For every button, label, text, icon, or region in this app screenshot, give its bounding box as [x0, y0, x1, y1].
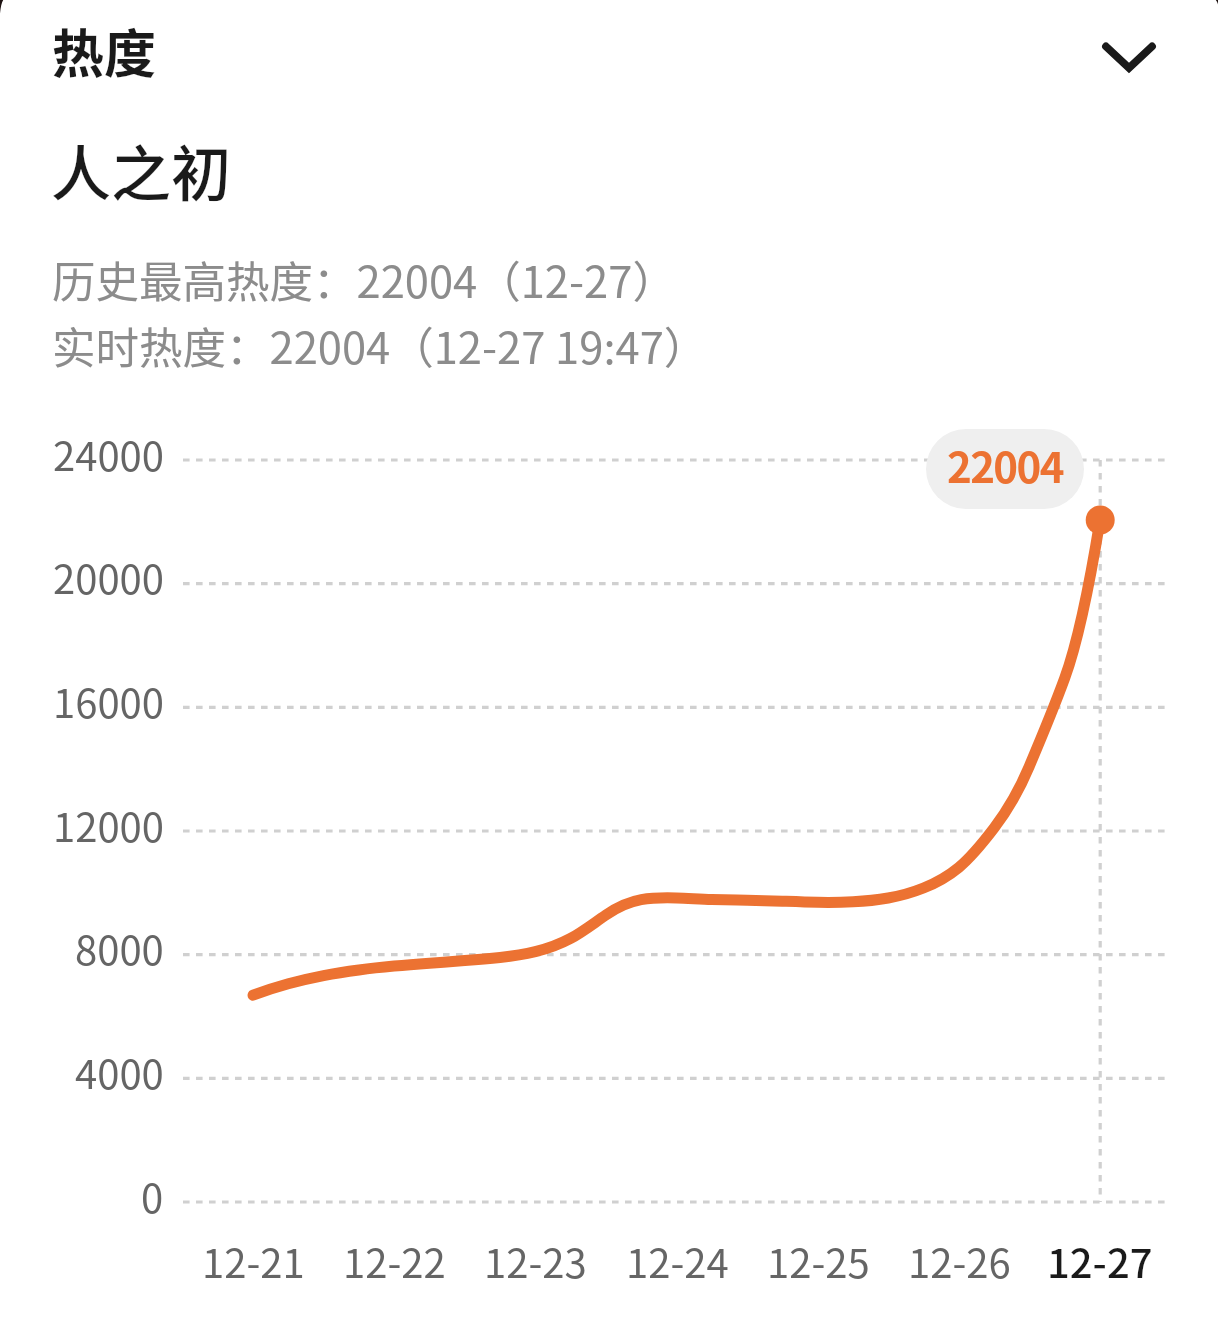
staticText: 实时热度：22004（12-27 19:47）	[52, 314, 708, 377]
button[interactable]: 12-25	[738, 1232, 898, 1290]
staticText: 12-26	[908, 1232, 1011, 1290]
staticText: 0	[141, 1167, 164, 1225]
staticText: 历史最高热度：22004（12-27）	[52, 248, 676, 311]
staticText: 人之初	[51, 126, 231, 213]
staticText: 热度	[52, 13, 157, 88]
staticText: 12-27	[1047, 1232, 1153, 1290]
staticText: 12-25	[767, 1232, 870, 1290]
staticText: 12-21	[202, 1232, 305, 1290]
staticText: 12-24	[626, 1232, 729, 1290]
button[interactable]: 热度	[0, 0, 1218, 96]
button[interactable]: Collapse	[1081, 8, 1177, 104]
button[interactable]: 22004	[926, 429, 1084, 509]
button[interactable]: 12-23	[455, 1232, 615, 1290]
staticText: 4000	[75, 1043, 164, 1101]
button[interactable]: 12-22	[314, 1232, 474, 1290]
staticText: 20000	[53, 548, 164, 606]
button[interactable]: 12-27	[1020, 1232, 1180, 1290]
staticText: 12000	[53, 796, 164, 854]
staticText: 12-22	[343, 1232, 446, 1290]
staticText: 16000	[53, 672, 164, 730]
staticText: 22004	[947, 434, 1063, 495]
button[interactable]: 12-24	[597, 1232, 757, 1290]
button[interactable]: 12-21	[173, 1232, 333, 1290]
staticText: 8000	[75, 919, 164, 977]
staticText: 24000	[53, 425, 164, 483]
button[interactable]: 12-26	[879, 1232, 1039, 1290]
staticText: 12-23	[484, 1232, 587, 1290]
